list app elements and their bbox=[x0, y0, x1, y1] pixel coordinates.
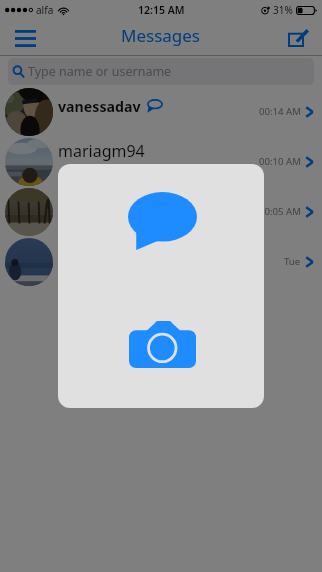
staticText: Messages bbox=[121, 24, 201, 47]
staticText: Type name or username bbox=[28, 63, 172, 80]
staticText: 00:10 AM bbox=[259, 155, 301, 168]
button[interactable]: Type name or username bbox=[8, 58, 314, 85]
staticText: 31% bbox=[273, 3, 293, 17]
staticText: vanessadav bbox=[58, 97, 141, 116]
button[interactable]: Compose bbox=[283, 22, 313, 52]
button[interactable]: Tue bbox=[0, 236, 322, 286]
staticText: Tue bbox=[284, 255, 301, 268]
staticText: 12:15 AM bbox=[138, 3, 185, 17]
button[interactable]: vanessadav bbox=[0, 86, 322, 136]
button[interactable]: Camera bbox=[129, 321, 196, 368]
button[interactable]: 00:05 AM bbox=[0, 186, 322, 236]
staticText: 00:05 AM bbox=[259, 205, 301, 218]
button[interactable]: mariagm94 bbox=[0, 136, 322, 186]
button[interactable]: New message bbox=[128, 192, 197, 250]
staticText: mariagm94 bbox=[58, 140, 145, 162]
button[interactable]: Menu bbox=[9, 23, 41, 53]
staticText: 00:14 AM bbox=[259, 105, 301, 118]
staticText: alfa bbox=[36, 3, 54, 17]
